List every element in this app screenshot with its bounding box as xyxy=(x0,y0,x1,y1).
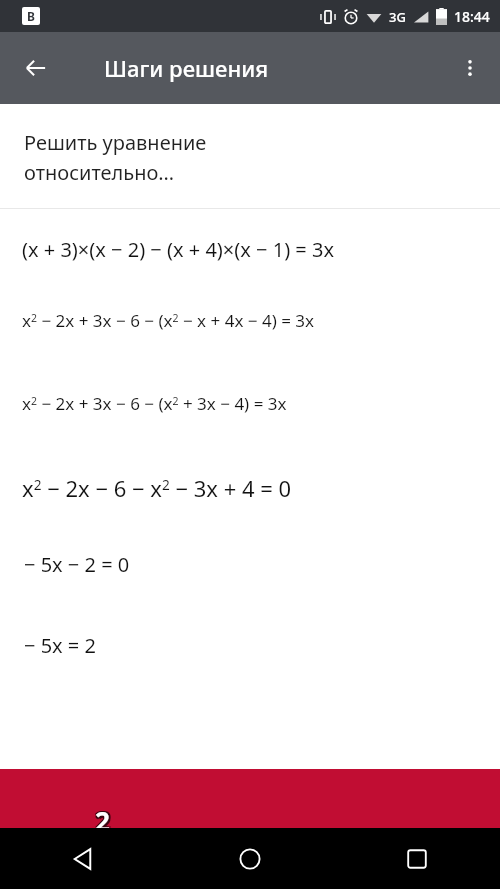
button[interactable]: Home xyxy=(166,828,333,889)
button[interactable]: Recent apps xyxy=(333,828,500,889)
button[interactable]: Back xyxy=(0,828,166,889)
staticText: 2 xyxy=(97,805,112,830)
staticText: x2 − 2x + 3x − 6 − (x2 − x + 4x − 4) = 3… xyxy=(22,309,315,332)
staticText: Шаги решения xyxy=(104,53,269,83)
staticText: Решить уравнение относительно… xyxy=(24,129,207,186)
staticText: − 5x − 2 = 0 xyxy=(24,551,130,578)
staticText: 2 xyxy=(94,803,109,828)
staticText: 2 xyxy=(95,803,110,828)
staticText: − 5x = 2 xyxy=(24,632,96,659)
staticText: 2 xyxy=(97,803,112,828)
staticText: 2 xyxy=(97,802,112,827)
staticText: 2 xyxy=(95,802,110,827)
staticText: B xyxy=(27,8,35,24)
button[interactable]: 2 xyxy=(0,769,500,828)
button[interactable]: More options xyxy=(446,44,494,92)
button[interactable]: Back xyxy=(12,44,60,92)
staticText: 2 xyxy=(94,802,109,827)
staticText: (x + 3)×(x − 2) − (x + 4)×(x − 1) = 3x xyxy=(22,236,335,263)
staticText: 18:44 xyxy=(454,7,490,26)
staticText: 2 xyxy=(94,805,109,830)
staticText: x2 − 2x − 6 − x2 − 3x + 4 = 0 xyxy=(22,473,292,503)
staticText: 2 xyxy=(95,805,110,830)
staticText: x2 − 2x + 3x − 6 − (x2 + 3x − 4) = 3x xyxy=(22,392,287,415)
staticText: 3G xyxy=(389,8,406,26)
